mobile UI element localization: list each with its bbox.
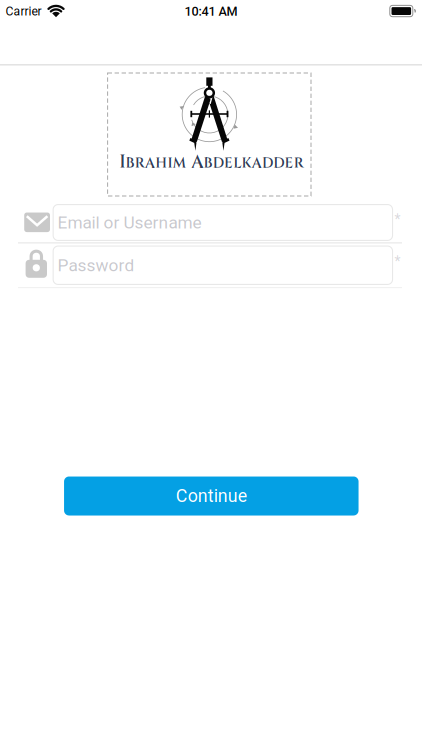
- staticText: L: [233, 154, 241, 173]
- staticText: D: [213, 154, 224, 173]
- staticText: E: [224, 154, 233, 173]
- staticText: I: [167, 154, 172, 173]
- staticText: Email or Username: [57, 212, 201, 233]
- staticText: Carrier: [5, 4, 41, 18]
- staticText: B: [125, 154, 134, 173]
- staticText: D: [262, 154, 273, 173]
- staticText: A: [145, 154, 155, 173]
- staticText: K: [241, 154, 251, 173]
- staticText: R: [294, 154, 304, 173]
- staticText: E: [284, 154, 293, 173]
- staticText: Continue: [176, 486, 247, 506]
- staticText: H: [155, 154, 167, 173]
- staticText: *: [394, 211, 400, 228]
- button[interactable]: Password: [0, 243, 422, 287]
- button[interactable]: Continue: [64, 476, 359, 515]
- staticText: A: [252, 154, 262, 173]
- staticText: A: [191, 150, 203, 174]
- staticText: *: [394, 253, 400, 270]
- staticText: Password: [57, 255, 134, 275]
- staticText: R: [135, 154, 145, 173]
- staticText: 10:41 AM: [184, 4, 237, 19]
- button[interactable]: Email or Username: [0, 202, 422, 243]
- staticText: D: [273, 154, 284, 173]
- staticText: M: [173, 154, 186, 173]
- staticText: I: [119, 150, 125, 174]
- staticText: B: [203, 154, 212, 173]
